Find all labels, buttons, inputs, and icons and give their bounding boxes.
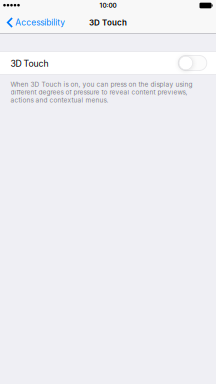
staticText: 10:00	[99, 2, 116, 9]
staticText: 3D Touch	[89, 18, 127, 27]
staticText: When 3D Touch is on, you can press on th…	[10, 80, 192, 104]
staticText: Accessibility	[15, 17, 65, 28]
button[interactable]: Accessibility	[0, 11, 70, 34]
button[interactable]: 3D Touch	[0, 51, 216, 74]
staticText: 3D Touch	[10, 58, 48, 69]
